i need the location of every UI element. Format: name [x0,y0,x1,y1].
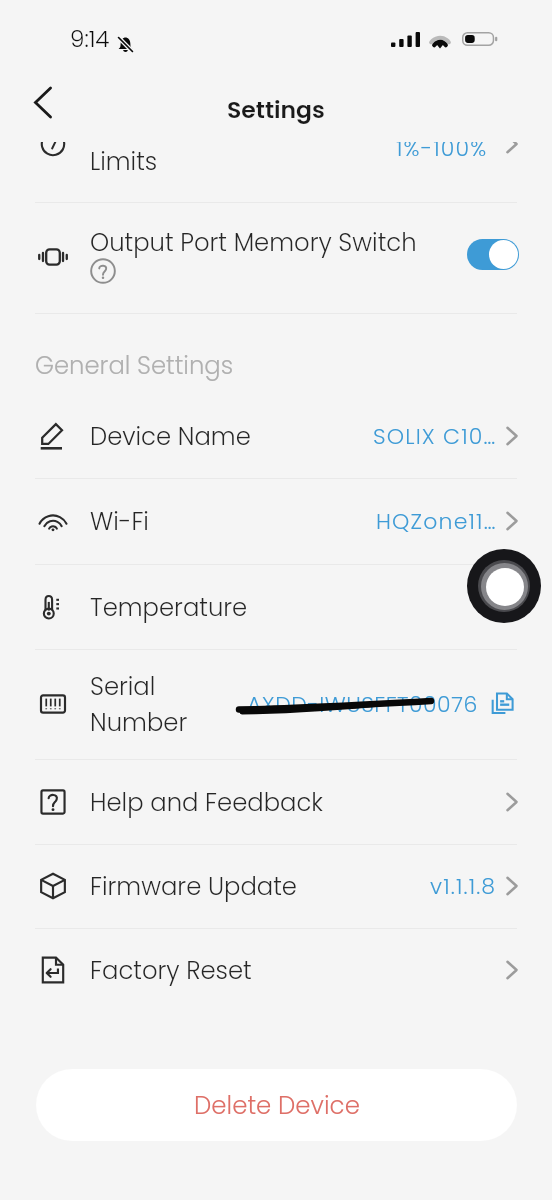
button[interactable]: Serial [0,649,552,759]
button[interactable]: Output Port Memory Switch toggle [467,239,519,270]
button[interactable]: Output Port Memory Switch [0,203,552,313]
staticText: 1%-100% [396,142,488,164]
button[interactable]: Back [20,78,66,124]
staticText: AXDD-IWUSFFT00076 [247,689,478,720]
staticText: 9:14 [70,23,110,55]
staticText: Device Name [90,419,251,453]
staticText: HQZone11… [376,506,497,537]
staticText: Temperature [90,590,248,624]
button[interactable]: Help and Feedback [0,759,552,844]
staticText: v1.1.1.8 [430,871,497,902]
staticText: SOLIX C10… [373,421,497,452]
staticText: Delete Device [194,1088,360,1122]
button[interactable]: Wi-Fi [0,478,552,564]
button[interactable]: Factory Reset [0,928,552,1012]
button[interactable]: Delete Device [36,1069,517,1141]
button[interactable]: Firmware Update [0,844,552,928]
staticText: General Settings [35,348,234,382]
staticText: Wi-Fi [90,504,149,538]
staticText: Settings [227,93,325,126]
button[interactable]: Assistive touch [467,549,541,623]
staticText: Number [90,705,188,739]
staticText: Limits [90,144,158,178]
button[interactable]: Limits [0,142,552,202]
staticText: Firmware Update [90,869,297,903]
staticText: Help and Feedback [90,785,324,819]
button[interactable]: Temperature [0,564,552,649]
staticText: Factory Reset [90,953,252,987]
staticText: Output Port Memory Switch [90,225,417,259]
staticText: Serial [90,669,156,703]
button[interactable]: Device Name [0,394,552,478]
